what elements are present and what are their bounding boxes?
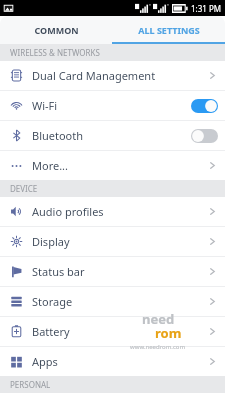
staticText: Battery xyxy=(32,324,207,339)
button[interactable]: More... xyxy=(0,151,225,180)
button[interactable]: Bluetooth xyxy=(0,121,225,150)
button[interactable]: Storage xyxy=(0,287,225,316)
staticText: WIRELESS & NETWORKS xyxy=(10,47,100,58)
staticText: 1:31 PM xyxy=(191,3,222,14)
button[interactable]: Battery xyxy=(0,317,225,346)
staticText: Status bar xyxy=(32,264,207,279)
button[interactable]: Wi-Fi xyxy=(0,91,225,120)
staticText: More... xyxy=(32,158,207,173)
staticText: Bluetooth xyxy=(32,128,191,143)
button[interactable]: Dual Card Management xyxy=(0,61,225,90)
button[interactable]: Status bar xyxy=(0,257,225,286)
button[interactable]: Switch on xyxy=(191,99,218,113)
staticText: PERSONAL xyxy=(10,379,51,390)
button[interactable]: Display xyxy=(0,227,225,256)
staticText: Wi-Fi xyxy=(32,98,191,113)
staticText: need xyxy=(142,310,175,328)
button[interactable]: Apps xyxy=(0,347,225,376)
button[interactable]: COMMON xyxy=(0,16,112,44)
button[interactable]: ALL SETTINGS xyxy=(112,16,225,44)
staticText: ALL SETTINGS xyxy=(138,24,200,36)
staticText: Apps xyxy=(32,354,207,369)
staticText: rom xyxy=(155,324,182,342)
staticText: Display xyxy=(32,234,207,249)
staticText: Audio profiles xyxy=(32,204,207,219)
staticText: Dual Card Management xyxy=(32,68,207,83)
button[interactable]: Audio profiles xyxy=(0,197,225,226)
staticText: Storage xyxy=(32,294,207,309)
button[interactable]: Switch off xyxy=(191,129,218,143)
staticText: COMMON xyxy=(34,24,79,36)
staticText: www.needrom.com xyxy=(130,343,186,351)
staticText: DEVICE xyxy=(10,183,38,194)
